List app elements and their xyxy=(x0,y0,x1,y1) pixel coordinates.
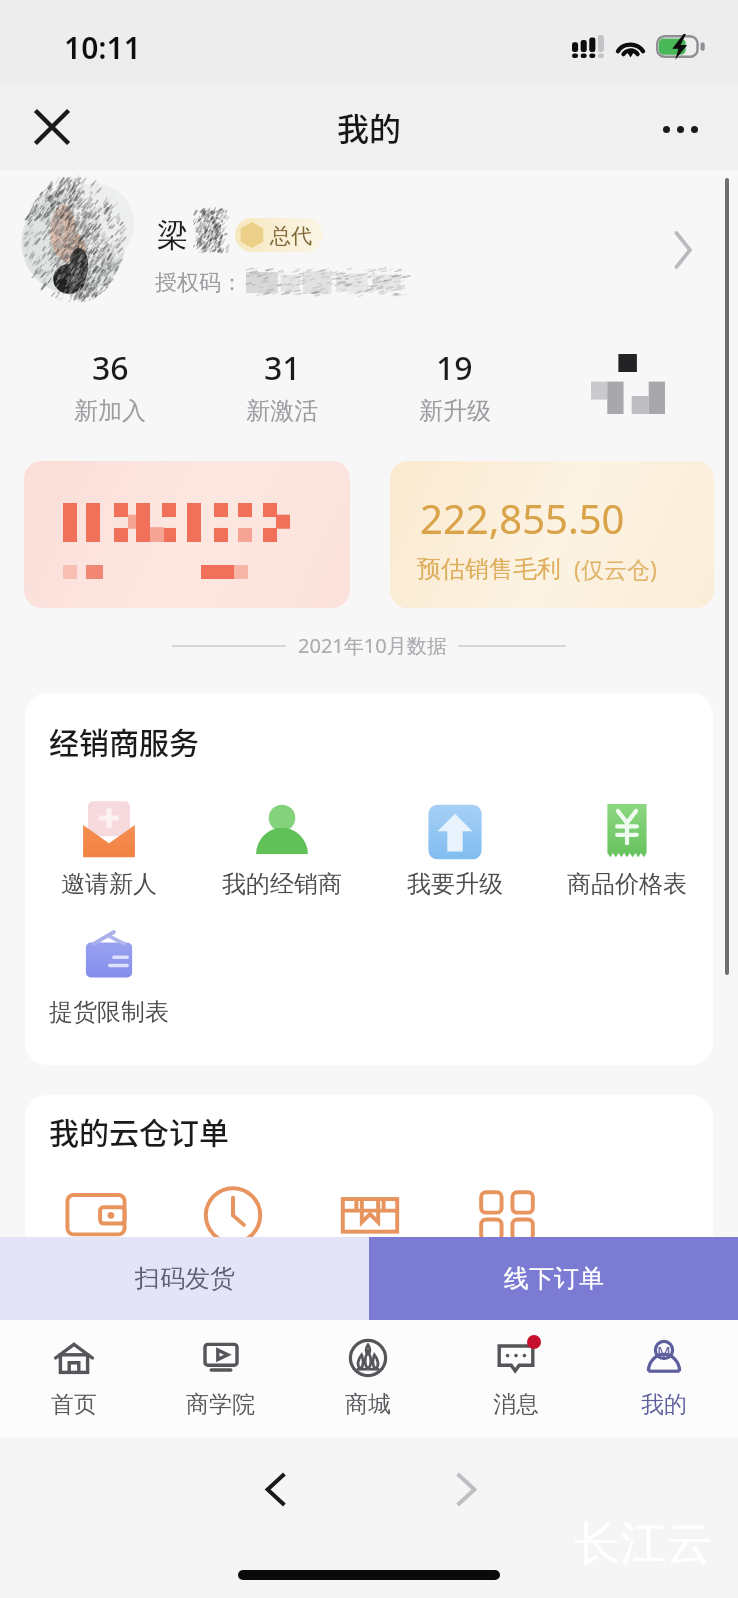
staticText: 首页 xyxy=(51,1390,97,1419)
staticText: 邀请新人 xyxy=(61,869,157,899)
staticText: M xyxy=(657,1341,671,1361)
button[interactable]: 商城 xyxy=(294,1320,442,1437)
button[interactable]: 首页 xyxy=(0,1320,147,1437)
button[interactable]: 商品价格表 xyxy=(541,797,713,899)
staticText: 新升级 xyxy=(419,396,491,426)
staticText: 我的云仓订单 xyxy=(49,1109,229,1152)
staticText: 梁 xyxy=(157,216,188,255)
button[interactable]: Back xyxy=(252,1465,300,1513)
button[interactable]: 31 xyxy=(196,346,368,426)
staticText: 扫码发货 xyxy=(135,1263,235,1294)
button[interactable]: 我要升级 xyxy=(369,797,541,899)
staticText: 商品价格表 xyxy=(567,869,687,899)
button[interactable]: Order category xyxy=(438,1180,575,1280)
staticText: 222,855.50 xyxy=(420,491,625,545)
button[interactable] xyxy=(24,461,350,608)
staticText: 商学院 xyxy=(186,1390,255,1419)
staticText: 经销商服务 xyxy=(49,719,199,762)
button[interactable]: 我的经销商 xyxy=(196,797,368,899)
staticText: 我的经销商 xyxy=(222,869,342,899)
button[interactable]: 提货限制表 xyxy=(25,925,195,1027)
staticText: 总代 xyxy=(270,223,312,249)
staticText: 线下订单 xyxy=(504,1263,604,1294)
button[interactable]: 梁 xyxy=(0,170,738,330)
staticText: 商城 xyxy=(345,1390,391,1419)
staticText: 2021年10月数据 xyxy=(298,632,447,659)
button[interactable]: Order category xyxy=(301,1180,438,1280)
staticText: 我的 xyxy=(337,104,402,150)
staticText: 新加入 xyxy=(74,396,146,426)
button[interactable]: Order category xyxy=(27,1180,164,1280)
button[interactable]: Order category xyxy=(164,1180,301,1280)
button[interactable]: 商学院 xyxy=(147,1320,294,1437)
button[interactable]: M xyxy=(590,1320,738,1437)
staticText: 消息 xyxy=(493,1390,539,1419)
staticText: 我的 xyxy=(641,1390,687,1419)
button[interactable]: Close xyxy=(24,99,80,155)
button[interactable]: 19 xyxy=(368,346,541,426)
staticText: (仅云仓) xyxy=(574,553,657,584)
button[interactable]: 消息 xyxy=(442,1320,590,1437)
staticText: 36 xyxy=(92,346,129,390)
button[interactable]: 36 xyxy=(24,346,196,426)
button[interactable]: 222,855.50 xyxy=(390,461,714,608)
button[interactable]: 线下订单 xyxy=(369,1237,738,1320)
staticText: 长江云 xyxy=(574,1515,712,1573)
staticText: 19 xyxy=(436,346,473,390)
staticText: 我要升级 xyxy=(407,869,503,899)
staticText: 授权码： xyxy=(155,269,243,297)
button[interactable]: Forward xyxy=(442,1465,490,1513)
button[interactable]: 扫码发货 xyxy=(0,1237,369,1320)
staticText: 预估销售毛利 xyxy=(417,554,561,584)
button[interactable]: 邀请新人 xyxy=(25,797,195,899)
staticText: 新激活 xyxy=(246,396,318,426)
staticText: 提货限制表 xyxy=(49,997,169,1027)
staticText: 31 xyxy=(264,346,301,390)
staticText: 10:11 xyxy=(64,27,141,68)
button[interactable]: More options xyxy=(650,99,710,159)
